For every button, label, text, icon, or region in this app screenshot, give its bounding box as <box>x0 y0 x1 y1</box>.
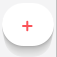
button[interactable]: Add <box>2 3 54 46</box>
